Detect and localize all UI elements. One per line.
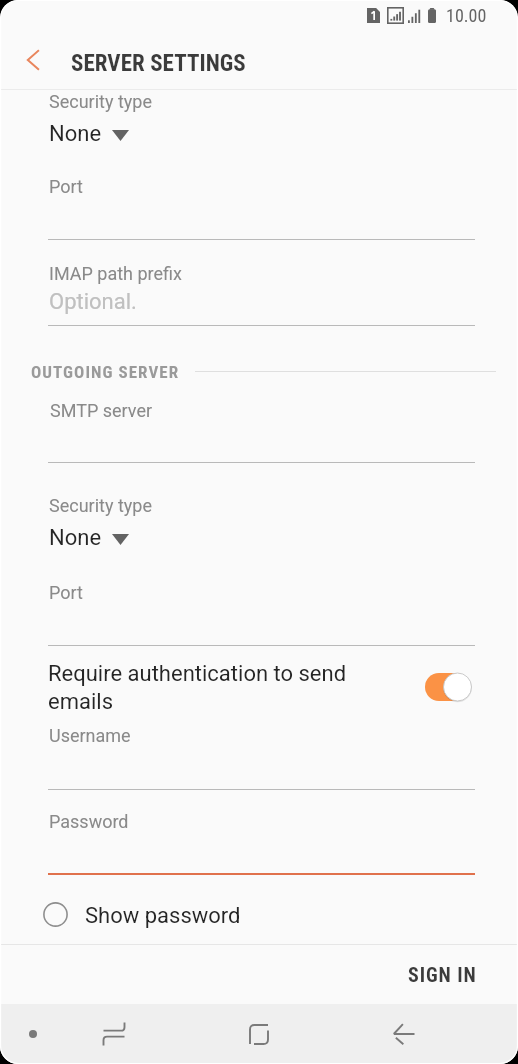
staticText: Port <box>49 582 83 603</box>
staticText: SMTP server <box>50 400 153 421</box>
staticText: 10.00 <box>446 5 487 26</box>
staticText: Security type <box>49 91 152 112</box>
button[interactable]: Home <box>237 1012 281 1056</box>
button[interactable]: Show password <box>36 894 266 936</box>
staticText: Require authentication to send <box>48 661 347 687</box>
button[interactable]: Require authentication to send emails <box>415 665 481 709</box>
staticText: Optional. <box>49 289 137 315</box>
button[interactable]: Recent apps <box>92 1012 136 1056</box>
button[interactable]: Hide navigation bar <box>11 1012 55 1056</box>
staticText: Password <box>49 811 129 832</box>
staticText: Port <box>49 176 83 197</box>
staticText: Username <box>49 725 131 746</box>
staticText: OUTGOING SERVER <box>31 362 180 382</box>
button[interactable]: Back <box>382 1012 426 1056</box>
staticText: None <box>49 121 102 147</box>
button[interactable]: SIGN IN <box>388 953 495 997</box>
staticText: None <box>49 525 102 551</box>
staticText: SIGN IN <box>408 963 477 986</box>
button[interactable]: Navigate up <box>10 39 54 83</box>
staticText: IMAP path prefix <box>49 263 182 284</box>
staticText: Security type <box>49 495 152 516</box>
staticText: Show password <box>85 903 241 929</box>
staticText: emails <box>48 689 113 715</box>
staticText: SERVER SETTINGS <box>71 50 246 77</box>
